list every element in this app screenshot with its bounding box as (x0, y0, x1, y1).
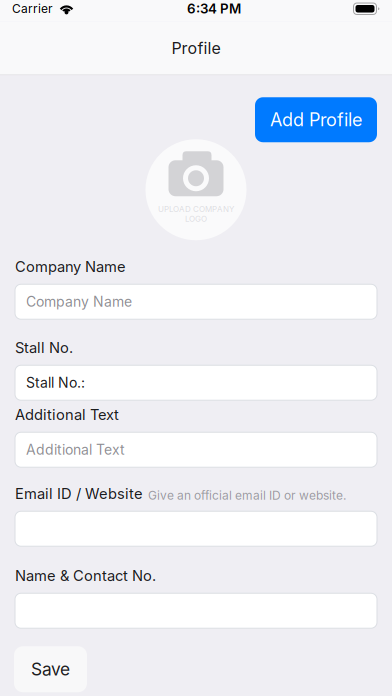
staticText: Stall No. (15, 339, 73, 357)
staticText: Add Profile (270, 109, 362, 131)
staticText: Company Name (26, 293, 132, 310)
button[interactable]: Save (14, 646, 87, 692)
staticText: Save (31, 659, 70, 680)
staticText: Name & Contact No. (15, 567, 156, 585)
staticText: Additional Text (26, 441, 125, 458)
staticText: Give an official email ID or website. (148, 488, 346, 503)
staticText: Carrier (12, 1, 53, 16)
staticText: Email ID / Website (15, 485, 143, 503)
button[interactable] (15, 511, 377, 546)
staticText: 6:34 PM (187, 1, 241, 17)
button[interactable]: Company Name (15, 284, 377, 319)
staticText: Profile (171, 39, 220, 58)
staticText: Company Name (15, 258, 126, 276)
button[interactable]: Add Profile (255, 97, 377, 142)
staticText: LOGO (185, 214, 207, 224)
button[interactable] (15, 593, 377, 628)
button[interactable]: Additional Text (15, 432, 377, 467)
staticText: Stall No.: (26, 374, 85, 391)
staticText: Additional Text (15, 406, 119, 424)
button[interactable]: Upload company logo (145, 139, 246, 240)
button[interactable]: Stall No.: (15, 365, 377, 400)
staticText: UPLOAD COMPANY (158, 204, 234, 214)
